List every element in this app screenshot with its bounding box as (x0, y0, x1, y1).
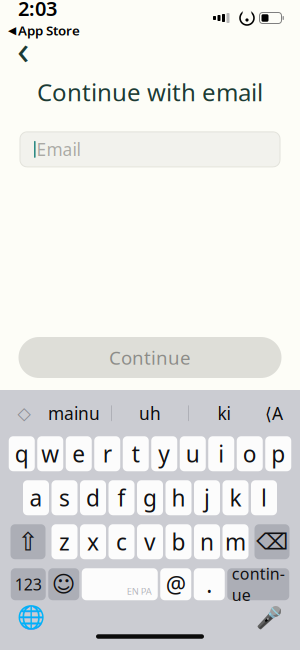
button[interactable]: Next keyboard (14, 602, 48, 632)
staticText: EN PA (127, 585, 152, 597)
button[interactable]: d (80, 480, 106, 515)
button[interactable]: o (237, 436, 263, 471)
staticText: v (144, 527, 156, 557)
staticText: e (72, 439, 85, 469)
staticText: . (206, 569, 212, 599)
staticText: y (158, 439, 170, 469)
staticText: n (200, 527, 214, 557)
staticText: g (143, 483, 157, 513)
button[interactable]: . (194, 568, 225, 600)
button[interactable]: ⟨A (259, 397, 289, 429)
staticText: z (59, 527, 70, 557)
staticText: u (186, 439, 200, 469)
button[interactable]: b (165, 524, 191, 559)
staticText: k (229, 483, 241, 513)
button[interactable]: mainu (37, 397, 111, 429)
button[interactable]: v (137, 524, 163, 559)
button[interactable]: Continue (18, 337, 281, 378)
button[interactable]: Shift (10, 524, 45, 559)
staticText: d (86, 483, 100, 513)
staticText: t (132, 439, 140, 469)
staticText: ⇧ (17, 527, 38, 556)
button[interactable]: 123 (11, 568, 46, 600)
staticText: uh (139, 402, 161, 425)
button[interactable]: g (137, 480, 163, 515)
staticText: 123 (15, 574, 42, 595)
staticText: mainu (48, 402, 100, 425)
button[interactable]: continue (227, 568, 289, 600)
staticText: ◀ (8, 24, 16, 36)
button[interactable]: j (194, 480, 220, 515)
button[interactable]: k (222, 480, 248, 515)
staticText: ki (217, 402, 230, 425)
button[interactable]: n (194, 524, 220, 559)
button[interactable]: q (9, 436, 35, 471)
button[interactable]: ki (189, 397, 259, 429)
staticText: Continue with email (37, 76, 263, 108)
button[interactable]: w (37, 436, 63, 471)
staticText: x (87, 527, 99, 557)
button[interactable]: m (222, 524, 248, 559)
button[interactable]: x (80, 524, 106, 559)
button[interactable]: i (208, 436, 234, 471)
staticText: p (271, 439, 285, 469)
button[interactable]: z (51, 524, 77, 559)
button[interactable]: p (265, 436, 291, 471)
staticText: 2:03 (18, 0, 57, 21)
staticText: c (116, 527, 127, 557)
button[interactable]: l (251, 480, 277, 515)
button[interactable]: u (180, 436, 206, 471)
button[interactable]: e (66, 436, 92, 471)
button[interactable]: uh (112, 397, 188, 429)
staticText: j (204, 483, 210, 513)
staticText: ⌫ (256, 529, 288, 555)
staticText: f (117, 483, 125, 513)
staticText: w (41, 439, 59, 469)
staticText: s (59, 483, 70, 513)
staticText: m (225, 527, 246, 557)
button[interactable]: Space (82, 568, 158, 600)
button[interactable]: Back (6, 34, 40, 64)
button[interactable]: Emoji (48, 568, 79, 600)
button[interactable]: s (51, 480, 77, 515)
staticText: ☺ (52, 571, 76, 597)
staticText: ◇ (17, 403, 30, 423)
button[interactable]: Expand predictions (11, 397, 37, 429)
button[interactable]: @ (160, 568, 191, 600)
staticText: ⟨A (265, 402, 283, 425)
staticText: i (218, 439, 224, 469)
staticText: r (103, 439, 112, 469)
staticText: App Store (18, 21, 80, 39)
button[interactable]: c (108, 524, 134, 559)
staticText: Continue (109, 345, 191, 370)
staticText: o (243, 439, 257, 469)
staticText: a (29, 483, 42, 513)
staticText: ‹ (17, 22, 29, 75)
staticText: h (171, 483, 185, 513)
staticText: q (15, 439, 29, 469)
button[interactable]: y (151, 436, 177, 471)
staticText: 🌐 (17, 604, 45, 630)
staticText: Email (37, 138, 81, 161)
button[interactable]: t (123, 436, 149, 471)
button[interactable]: Delete (254, 524, 289, 559)
staticText: l (261, 483, 267, 513)
button[interactable]: r (94, 436, 120, 471)
button[interactable]: f (108, 480, 134, 515)
staticText: continue (232, 563, 285, 605)
staticText: @ (166, 569, 186, 599)
button[interactable]: a (23, 480, 49, 515)
staticText: b (171, 527, 185, 557)
button[interactable]: h (165, 480, 191, 515)
button[interactable]: Dictation (252, 602, 286, 632)
staticText: 🎤 (255, 605, 282, 629)
